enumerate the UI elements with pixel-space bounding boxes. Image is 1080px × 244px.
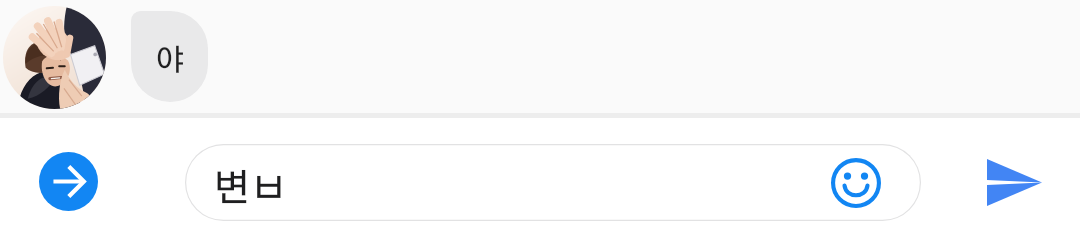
button[interactable]: Expand <box>39 152 98 211</box>
button[interactable]: 야 <box>131 11 208 102</box>
staticText: 야 <box>155 46 185 76</box>
button[interactable]: Profile photo <box>3 6 106 109</box>
button[interactable]: Send <box>987 159 1042 206</box>
button[interactable]: 변ㅂ <box>185 144 921 221</box>
staticText: 변ㅂ <box>213 171 288 209</box>
button[interactable]: Emoji <box>831 158 881 208</box>
